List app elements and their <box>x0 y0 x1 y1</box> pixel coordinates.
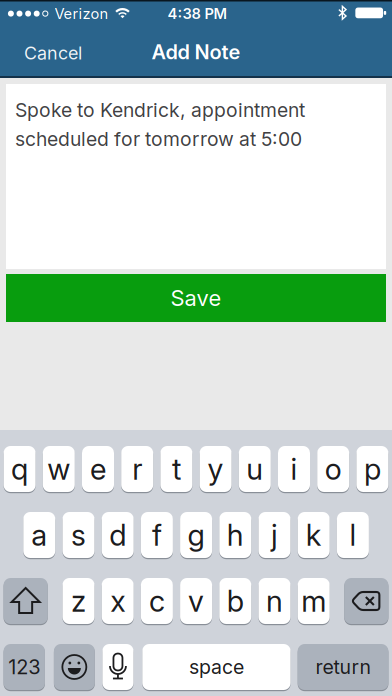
staticText: v <box>188 583 204 619</box>
staticText: k <box>306 517 322 553</box>
staticText: Save <box>170 285 221 311</box>
button[interactable]: t <box>160 445 192 493</box>
staticText: x <box>110 583 125 619</box>
staticText: 123 <box>8 655 40 679</box>
staticText: s <box>71 517 86 553</box>
staticText: t <box>172 451 181 487</box>
staticText: y <box>208 451 224 487</box>
button[interactable]: v <box>180 577 212 625</box>
staticText: z <box>71 583 86 619</box>
staticText: a <box>31 517 47 553</box>
button[interactable]: l <box>337 511 369 559</box>
button[interactable]: s <box>62 511 94 559</box>
staticText: 4:38 PM <box>167 5 227 22</box>
staticText: c <box>149 583 165 619</box>
button[interactable]: p <box>356 445 388 493</box>
staticText: u <box>246 451 263 487</box>
button[interactable]: space <box>142 643 291 691</box>
button[interactable]: f <box>141 511 173 559</box>
staticText: Spoke to Kendrick, appointment <box>15 98 305 122</box>
staticText: return <box>316 655 371 679</box>
button[interactable]: x <box>102 577 134 625</box>
button[interactable]: b <box>219 577 251 625</box>
staticText: p <box>364 451 381 487</box>
button[interactable]: w <box>43 445 75 493</box>
staticText: scheduled for tomorrow at 5:00 <box>15 127 302 151</box>
button[interactable]: Emoji <box>54 643 95 691</box>
staticText: b <box>227 583 244 619</box>
button[interactable]: Save <box>6 274 386 322</box>
staticText: f <box>152 517 162 553</box>
button[interactable]: Cancel <box>13 33 93 73</box>
button[interactable]: r <box>121 445 153 493</box>
button[interactable]: Dictate <box>102 643 133 691</box>
button[interactable]: j <box>258 511 290 559</box>
button[interactable]: c <box>141 577 173 625</box>
staticText: Cancel <box>24 42 82 64</box>
staticText: w <box>47 451 70 487</box>
staticText: n <box>266 583 283 619</box>
button[interactable]: n <box>258 577 290 625</box>
staticText: j <box>271 517 278 553</box>
button[interactable]: Delete <box>344 577 388 625</box>
staticText: r <box>132 451 142 487</box>
button[interactable]: e <box>82 445 114 493</box>
staticText: o <box>325 451 342 487</box>
button[interactable]: m <box>298 577 330 625</box>
staticText: e <box>90 451 106 487</box>
staticText: m <box>301 583 326 619</box>
staticText: g <box>188 517 205 553</box>
button[interactable]: g <box>180 511 212 559</box>
staticText: h <box>227 517 244 553</box>
button[interactable]: d <box>102 511 134 559</box>
staticText: Verizon <box>54 5 108 22</box>
staticText: i <box>290 451 297 487</box>
button[interactable]: a <box>23 511 55 559</box>
button[interactable]: o <box>317 445 349 493</box>
staticText: d <box>109 517 126 553</box>
button[interactable]: Shift <box>4 577 48 625</box>
staticText: Add Note <box>151 40 240 64</box>
button[interactable]: return <box>298 643 388 691</box>
button[interactable]: z <box>62 577 94 625</box>
button[interactable]: y <box>200 445 232 493</box>
button[interactable]: q <box>4 445 36 493</box>
staticText: l <box>349 517 356 553</box>
button[interactable]: k <box>298 511 330 559</box>
button[interactable]: h <box>219 511 251 559</box>
button[interactable]: 123 <box>4 643 45 691</box>
staticText: q <box>11 451 28 487</box>
button[interactable]: u <box>239 445 271 493</box>
staticText: space <box>189 655 244 679</box>
button[interactable]: i <box>278 445 310 493</box>
